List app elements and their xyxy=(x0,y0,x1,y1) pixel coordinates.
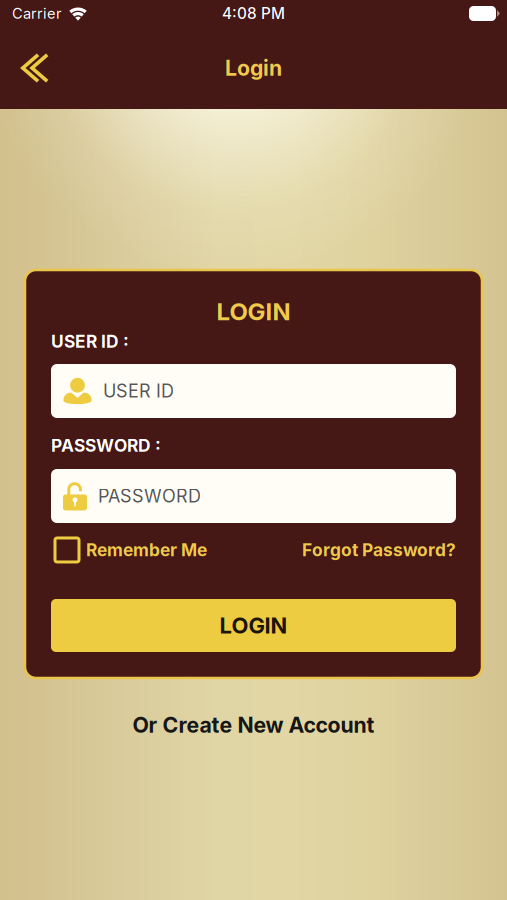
staticText: Or Create New Account xyxy=(132,712,374,738)
staticText: LOGIN xyxy=(219,612,287,639)
button[interactable]: Back xyxy=(0,27,65,109)
staticText: Remember Me xyxy=(86,539,207,560)
staticText: Forgot Password? xyxy=(302,539,456,560)
button[interactable]: USER ID xyxy=(51,364,456,418)
button[interactable]: Remember Me xyxy=(51,538,207,562)
staticText: 4:08 PM xyxy=(222,4,285,23)
staticText: PASSWORD xyxy=(98,485,201,507)
button[interactable]: PASSWORD xyxy=(51,469,456,523)
staticText: Carrier xyxy=(12,5,62,22)
staticText: USER ID xyxy=(103,380,174,402)
staticText: USER ID : xyxy=(51,331,129,352)
staticText: Login xyxy=(225,55,282,81)
staticText: PASSWORD : xyxy=(51,435,161,456)
button[interactable]: Or Create New Account xyxy=(132,678,374,750)
staticText: LOGIN xyxy=(216,297,290,326)
button[interactable]: LOGIN xyxy=(51,599,456,652)
button[interactable]: Forgot Password? xyxy=(302,539,456,560)
